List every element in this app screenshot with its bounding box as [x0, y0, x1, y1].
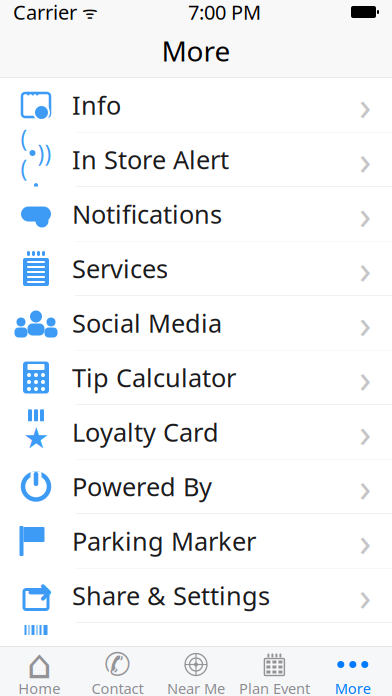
- staticText: Social Media: [72, 306, 222, 340]
- staticText: ((: [20, 123, 27, 183]
- button[interactable]: Services: [0, 241, 392, 295]
- staticText: Near Me Alert: [167, 678, 225, 696]
- staticText: Plan Event: [239, 678, 310, 696]
- button[interactable]: Info: [0, 78, 392, 132]
- button[interactable]: ➜: [0, 568, 392, 622]
- button[interactable]: ✆: [78, 646, 157, 696]
- staticText: Tip Calculator: [72, 361, 236, 394]
- staticText: ›: [359, 242, 371, 295]
- staticText: Share & Settings: [72, 579, 270, 612]
- staticText: Loyalty Card: [72, 415, 219, 449]
- button[interactable]: ((: [0, 132, 392, 186]
- staticText: Services: [72, 252, 168, 285]
- staticText: ⌂: [27, 642, 52, 687]
- staticText: Powered By: [72, 470, 212, 503]
- staticText: More: [335, 678, 371, 696]
- staticText: ›: [359, 405, 371, 458]
- staticText: ›: [359, 514, 371, 567]
- staticText: Notifications: [72, 197, 222, 231]
- staticText: ★: [23, 421, 49, 455]
- staticText: ›: [359, 460, 371, 513]
- staticText: ›: [359, 78, 371, 131]
- button[interactable]: Notifications: [0, 187, 392, 241]
- button[interactable]: ★: [0, 405, 392, 459]
- button[interactable]: More: [314, 646, 392, 696]
- staticText: Parking Marker: [72, 524, 256, 558]
- staticText: Contact: [92, 678, 144, 696]
- staticText: 7:00 PM: [188, 0, 261, 25]
- staticText: )): [37, 138, 51, 168]
- button[interactable]: Powered By: [0, 459, 392, 513]
- staticText: Home: [18, 678, 60, 696]
- button[interactable]: Parking Marker: [0, 514, 392, 568]
- staticText: More: [161, 32, 230, 69]
- button[interactable]: Tip Calculator: [0, 350, 392, 404]
- staticText: ›: [359, 133, 371, 186]
- staticText: Carrier: [13, 0, 77, 25]
- button[interactable]: Plan Event: [235, 646, 314, 696]
- button[interactable]: ⌂: [0, 646, 78, 696]
- staticText: ›: [359, 187, 371, 240]
- staticText: In Store Alert: [72, 143, 229, 176]
- button[interactable]: Near Me Alert: [157, 646, 235, 696]
- staticText: ᯤ: [77, 0, 98, 23]
- staticText: ›: [359, 351, 371, 404]
- staticText: ›: [359, 569, 371, 622]
- staticText: ✆: [104, 646, 131, 683]
- staticText: Info: [72, 88, 121, 122]
- button[interactable]: Social Media: [0, 296, 392, 350]
- staticText: ➜: [26, 573, 53, 610]
- staticText: ›: [359, 296, 371, 349]
